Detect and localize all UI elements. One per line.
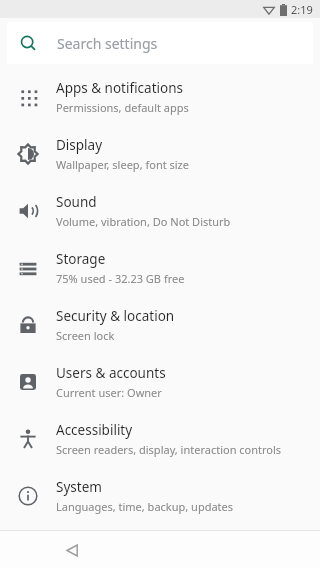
staticText: Accessibility: [56, 421, 133, 439]
button[interactable]: Storage: [0, 239, 320, 296]
staticText: Screen readers, display, interaction con…: [56, 442, 282, 457]
staticText: Search settings: [57, 34, 158, 53]
staticText: Sound: [56, 193, 97, 211]
button[interactable]: Search settings: [7, 22, 313, 64]
staticText: Screen lock: [56, 328, 115, 343]
button[interactable]: System: [0, 467, 320, 524]
staticText: 2:19: [291, 2, 313, 17]
staticText: Permissions, default apps: [56, 100, 189, 115]
button[interactable]: Sound: [0, 182, 320, 239]
button[interactable]: Users & accounts: [0, 353, 320, 410]
button[interactable]: Apps & notifications: [0, 68, 320, 125]
button[interactable]: Security & location: [0, 296, 320, 353]
staticText: 75% used - 32.23 GB free: [56, 271, 185, 286]
staticText: Security & location: [56, 307, 175, 325]
staticText: Languages, time, backup, updates: [56, 499, 234, 514]
button[interactable]: Back: [58, 536, 86, 564]
staticText: Storage: [56, 250, 106, 268]
staticText: System: [56, 478, 102, 496]
staticText: Users & accounts: [56, 364, 166, 382]
button[interactable]: Accessibility: [0, 410, 320, 467]
staticText: Wallpaper, sleep, font size: [56, 157, 189, 172]
staticText: Volume, vibration, Do Not Disturb: [56, 214, 231, 229]
button[interactable]: Display: [0, 125, 320, 182]
staticText: Current user: Owner: [56, 385, 162, 400]
staticText: Apps & notifications: [56, 79, 183, 97]
staticText: Display: [56, 136, 103, 154]
